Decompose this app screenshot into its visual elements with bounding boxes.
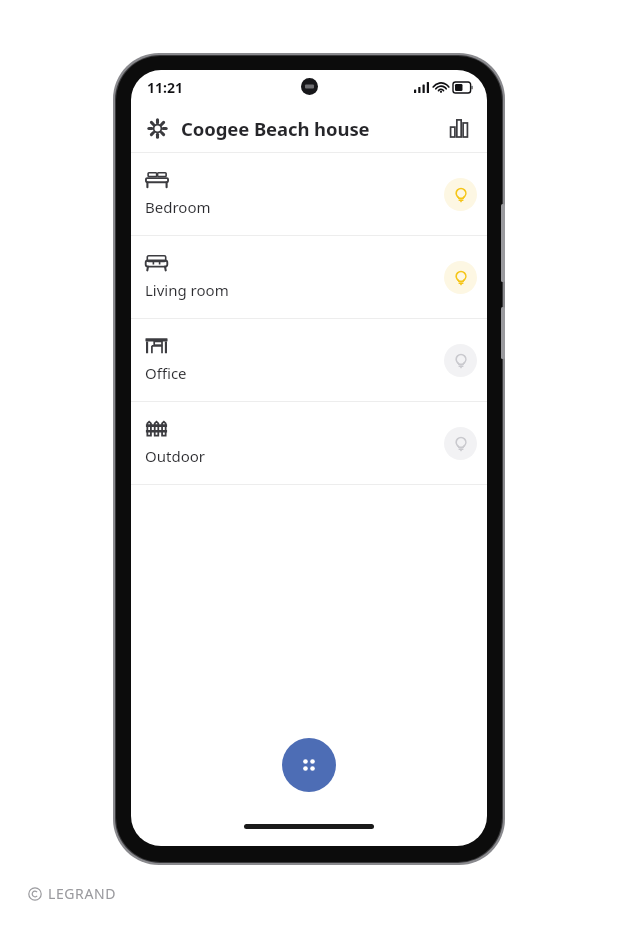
button[interactable]: Scenes <box>282 738 336 792</box>
staticText: LEGRAND <box>48 884 117 903</box>
staticText: Living room <box>145 280 229 300</box>
staticText: Bedroom <box>145 197 211 217</box>
button[interactable]: Outdoor <box>131 402 487 484</box>
button[interactable]: Settings <box>139 110 175 146</box>
button[interactable]: Bedroom <box>131 153 487 235</box>
staticText: Outdoor <box>145 446 205 466</box>
staticText: Coogee Beach house <box>181 116 370 141</box>
button[interactable]: Turn off lights <box>444 261 477 294</box>
button[interactable]: Turn off lights <box>444 178 477 211</box>
staticText: 11:21 <box>147 78 183 97</box>
button[interactable]: Turn on lights <box>444 427 477 460</box>
staticText: Office <box>145 363 187 383</box>
button[interactable]: Office <box>131 319 487 401</box>
button[interactable]: Energy <box>441 110 477 146</box>
button[interactable]: Living room <box>131 236 487 318</box>
button[interactable]: Turn on lights <box>444 344 477 377</box>
